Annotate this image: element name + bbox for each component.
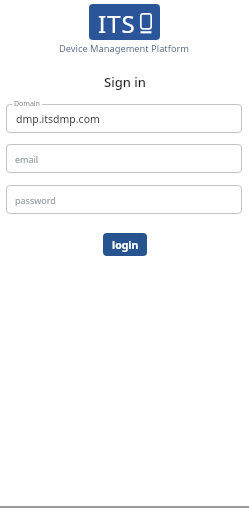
staticText: ITS	[98, 7, 136, 40]
button[interactable]: email	[6, 144, 242, 173]
staticText: login	[112, 238, 139, 252]
button[interactable]: dmp.itsdmp.com	[6, 104, 242, 133]
staticText: Sign in	[104, 73, 146, 91]
button[interactable]: login	[103, 233, 147, 256]
staticText: dmp.itsdmp.com	[16, 112, 100, 126]
staticText: email	[15, 153, 39, 165]
button[interactable]: password	[6, 185, 242, 214]
staticText: Domain	[14, 99, 40, 109]
staticText: password	[15, 194, 56, 206]
staticText: Device Management Platform	[59, 42, 190, 55]
